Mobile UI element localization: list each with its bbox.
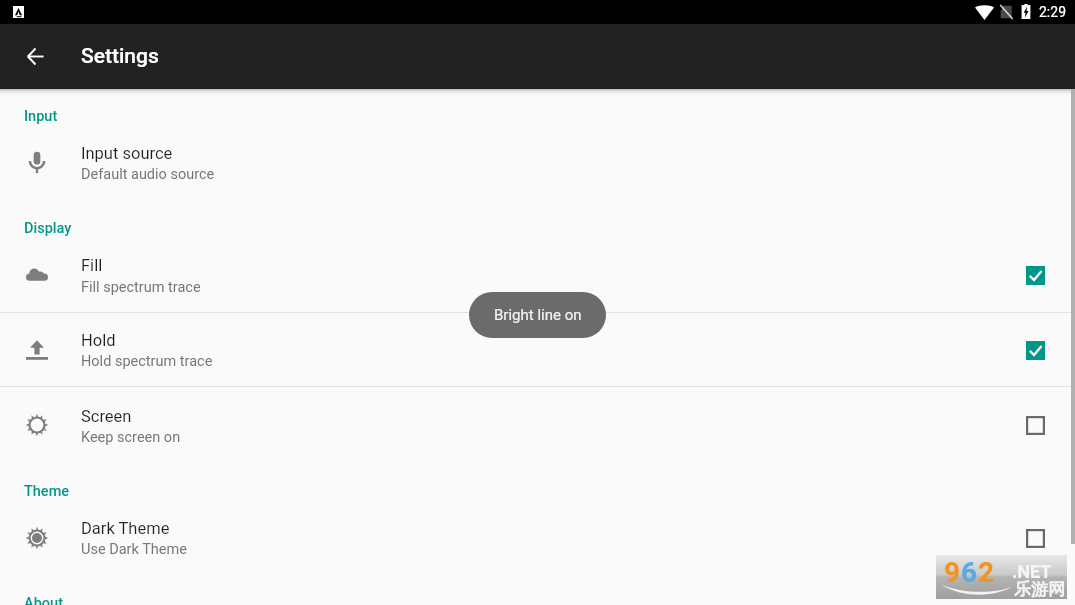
staticText: About [24,595,63,605]
staticText: Input [24,108,58,125]
staticText: 2 [978,556,995,589]
button[interactable]: Fill [993,238,1075,312]
staticText: .NET [1012,561,1052,582]
staticText: Fill [81,256,103,275]
button[interactable]: Screen [993,387,1075,460]
button[interactable]: Hold [0,313,1075,386]
button[interactable]: Dark Theme [993,503,1075,577]
button[interactable]: Fill [0,238,1075,312]
staticText: 9 [944,556,961,589]
staticText: Hold [81,331,116,350]
staticText: Use Dark Theme [81,541,187,558]
staticText: Input source [81,144,173,163]
staticText: 6 [961,556,978,589]
button[interactable]: Back [0,24,64,89]
staticText: Keep screen on [81,429,181,446]
staticText: Hold spectrum trace [81,353,213,370]
staticText: Display [24,220,72,237]
staticText: Default audio source [81,166,215,183]
staticText: 乐游网 [1014,579,1065,600]
button[interactable]: Screen [0,387,1075,460]
staticText: Dark Theme [81,519,170,538]
staticText: Theme [24,483,70,500]
button[interactable]: Input source [0,128,1075,202]
button[interactable]: Dark Theme [0,503,1075,577]
staticText: 2:29 [1039,4,1066,20]
staticText: Settings [81,44,159,69]
button[interactable]: Hold [993,313,1075,386]
staticText: Fill spectrum trace [81,279,201,296]
staticText: Bright line on [494,306,582,324]
staticText: Screen [81,407,132,426]
